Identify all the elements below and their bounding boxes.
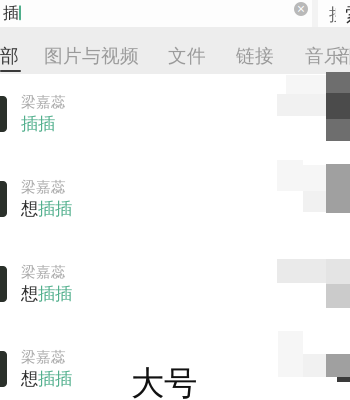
staticText: 插插 bbox=[38, 368, 72, 389]
button[interactable]: 音乐 bbox=[0, 27, 38, 69]
staticText: ✕ bbox=[296, 3, 305, 15]
button[interactable]: 梁嘉蕊 bbox=[0, 244, 350, 329]
staticText: 插插 bbox=[38, 198, 72, 219]
staticText: 部 bbox=[338, 44, 350, 67]
button[interactable]: Clear search text bbox=[290, 0, 312, 20]
staticText: 插插 bbox=[21, 113, 55, 134]
staticText: 图片与视频 bbox=[44, 44, 139, 67]
staticText: 梁嘉蕊 bbox=[21, 178, 66, 196]
staticText: 想 bbox=[21, 198, 38, 219]
staticText: 梁嘉蕊 bbox=[21, 263, 66, 281]
staticText: 想 bbox=[21, 368, 38, 389]
staticText: 插插 bbox=[38, 283, 72, 304]
staticText: 想 bbox=[21, 283, 38, 304]
staticText: 音乐 bbox=[305, 44, 343, 67]
staticText: 索 bbox=[345, 2, 350, 27]
button[interactable]: 梁嘉蕊 bbox=[0, 159, 350, 244]
staticText: 梁嘉蕊 bbox=[21, 93, 66, 111]
staticText: 大号 bbox=[131, 363, 197, 400]
button[interactable]: 链接 bbox=[0, 27, 38, 69]
button[interactable]: 文件 bbox=[0, 27, 38, 69]
staticText: 部 bbox=[0, 44, 19, 67]
staticText: 梁嘉蕊 bbox=[21, 348, 66, 366]
staticText: 搜 bbox=[329, 4, 346, 25]
button[interactable]: 梁嘉蕊 bbox=[0, 74, 350, 159]
button[interactable]: 部 bbox=[0, 27, 19, 69]
staticText: 插 bbox=[3, 3, 19, 23]
button[interactable]: 梁嘉蕊 bbox=[0, 329, 350, 400]
staticText: 链接 bbox=[236, 44, 274, 67]
button[interactable]: 部 bbox=[0, 27, 19, 69]
button[interactable]: 图片与视频 bbox=[0, 27, 95, 69]
staticText: 文件 bbox=[168, 44, 206, 67]
